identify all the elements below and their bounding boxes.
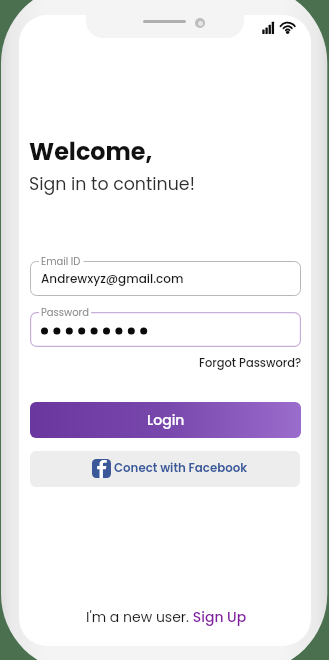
staticText: Andrewxyz@gmail.com bbox=[41, 270, 184, 287]
staticText: Forgot Password? bbox=[199, 355, 302, 371]
staticText: Conect with Facebook bbox=[114, 460, 248, 477]
button[interactable]: I'm a new user. Sign Up bbox=[81, 602, 252, 632]
button[interactable]: Password bbox=[30, 312, 301, 347]
staticText: Email ID bbox=[41, 254, 81, 268]
button[interactable]: Conect with Facebook bbox=[30, 451, 300, 487]
other: Cellular signal bbox=[260, 19, 276, 36]
button[interactable]: Forgot Password? bbox=[194, 350, 307, 376]
other: Wi-Fi bbox=[277, 19, 299, 37]
staticText: Welcome, bbox=[29, 135, 153, 168]
button[interactable]: Email ID bbox=[30, 261, 301, 296]
staticText: Password bbox=[41, 305, 90, 319]
staticText: Sign in to continue! bbox=[29, 172, 195, 196]
staticText: I'm a new user. Sign Up bbox=[86, 607, 247, 627]
staticText: Login bbox=[147, 410, 185, 430]
button[interactable]: Login bbox=[30, 402, 301, 438]
